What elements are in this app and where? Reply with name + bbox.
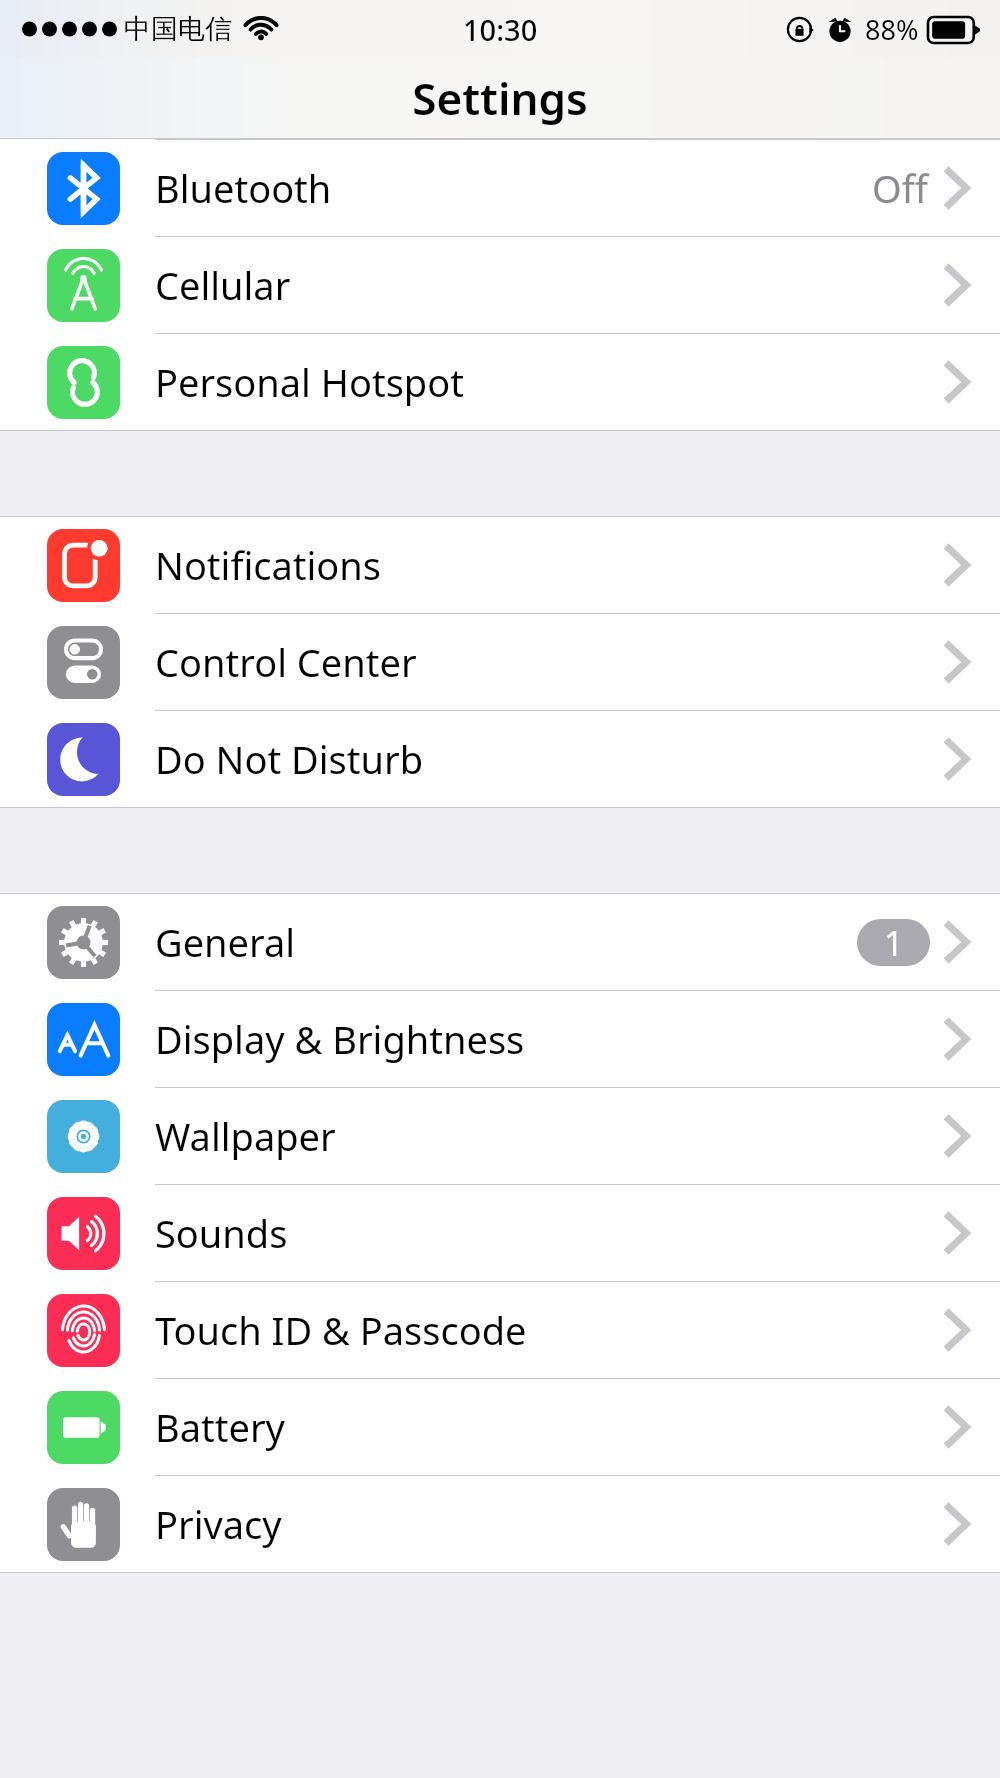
- staticText: Privacy: [155, 1498, 282, 1550]
- button[interactable]: Privacy: [0, 1476, 1000, 1572]
- button[interactable]: Notifications: [0, 517, 1000, 613]
- staticText: Notifications: [155, 539, 382, 591]
- staticText: Do Not Disturb: [155, 733, 424, 785]
- staticText: 88%: [865, 11, 919, 48]
- staticText: Wallpaper: [155, 1110, 336, 1162]
- button[interactable]: Cellular: [0, 237, 1000, 333]
- staticText: Personal Hotspot: [155, 356, 464, 408]
- staticText: Touch ID & Passcode: [155, 1304, 527, 1356]
- staticText: 1: [884, 920, 904, 966]
- button[interactable]: Personal Hotspot: [0, 334, 1000, 430]
- button[interactable]: Wallpaper: [0, 1088, 1000, 1184]
- button[interactable]: Sounds: [0, 1185, 1000, 1281]
- button[interactable]: Battery: [0, 1379, 1000, 1475]
- staticText: Bluetooth: [155, 162, 332, 214]
- staticText: General: [155, 916, 296, 968]
- staticText: Control Center: [155, 636, 417, 688]
- button[interactable]: Do Not Disturb: [0, 711, 1000, 807]
- staticText: Settings: [412, 68, 588, 128]
- staticText: Display & Brightness: [155, 1013, 525, 1065]
- button[interactable]: Bluetooth: [0, 140, 1000, 236]
- staticText: Battery: [155, 1401, 285, 1453]
- button[interactable]: Control Center: [0, 614, 1000, 710]
- staticText: Cellular: [155, 259, 291, 311]
- staticText: 中国电信: [124, 12, 232, 46]
- button[interactable]: General: [0, 894, 1000, 990]
- staticText: 10:30: [463, 10, 538, 49]
- staticText: Off: [872, 162, 928, 214]
- staticText: Sounds: [155, 1207, 288, 1259]
- button[interactable]: Display & Brightness: [0, 991, 1000, 1087]
- button[interactable]: Touch ID & Passcode: [0, 1282, 1000, 1378]
